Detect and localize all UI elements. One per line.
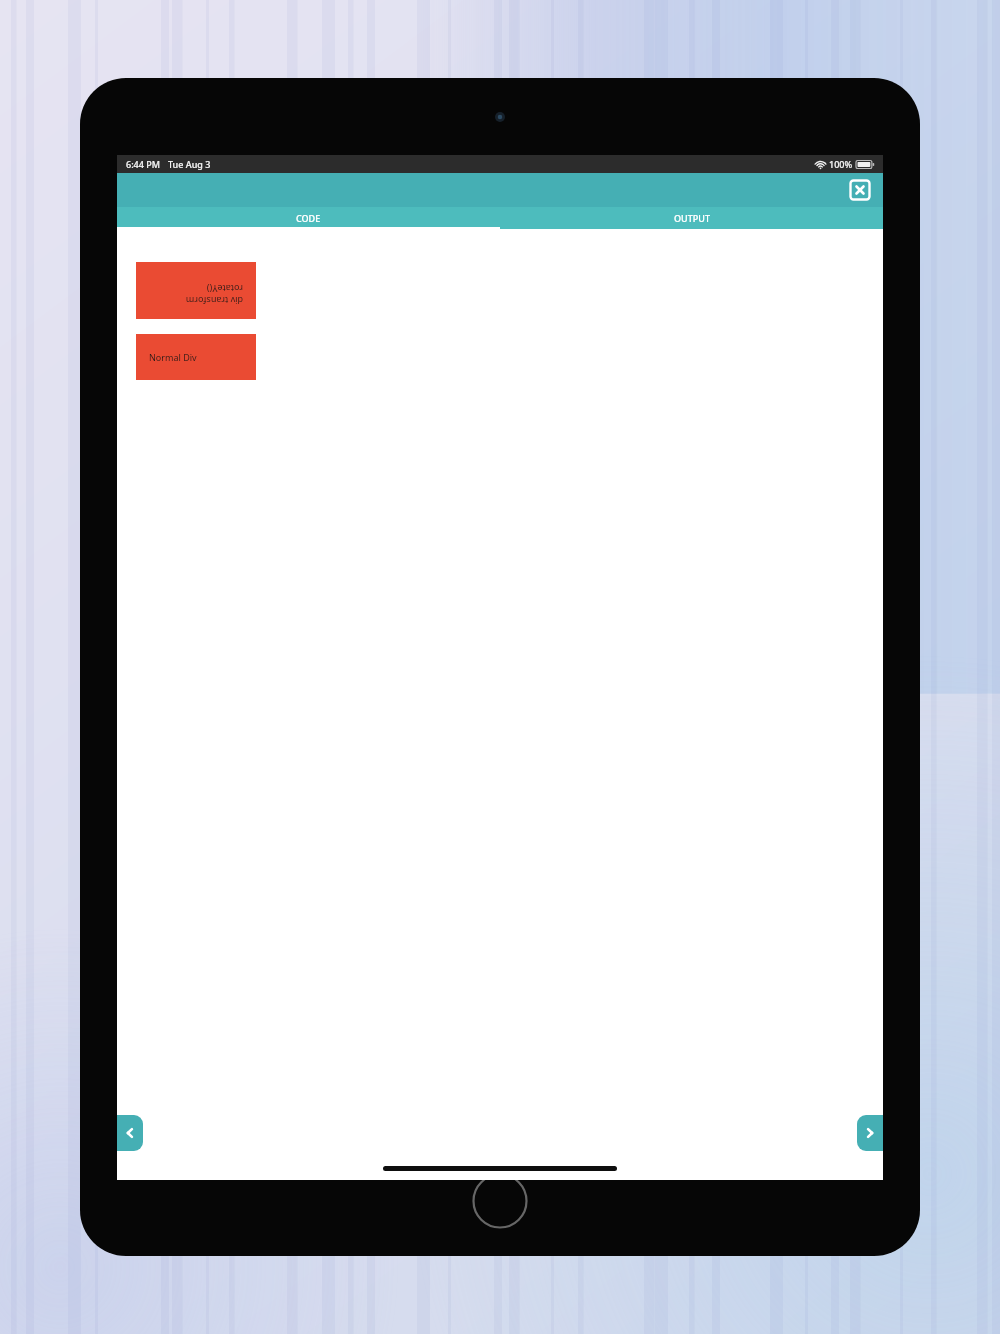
button[interactable]: Close [849, 179, 871, 201]
button[interactable]: CODE [117, 207, 500, 229]
button[interactable]: Previous [117, 1115, 143, 1151]
button[interactable]: Next [857, 1115, 883, 1151]
staticText: 100% [829, 158, 853, 170]
button[interactable]: div transform [136, 262, 256, 319]
staticText: Tue Aug 3 [168, 158, 211, 170]
staticText: CODE [296, 212, 321, 224]
button[interactable]: Normal Div [136, 334, 256, 380]
staticText: div transform [185, 295, 243, 307]
staticText: 6:44 PM [126, 158, 160, 170]
button[interactable]: OUTPUT [500, 207, 883, 229]
staticText: OUTPUT [674, 212, 710, 224]
staticText: rotateY() [206, 283, 243, 295]
staticText: Normal Div [149, 351, 197, 363]
